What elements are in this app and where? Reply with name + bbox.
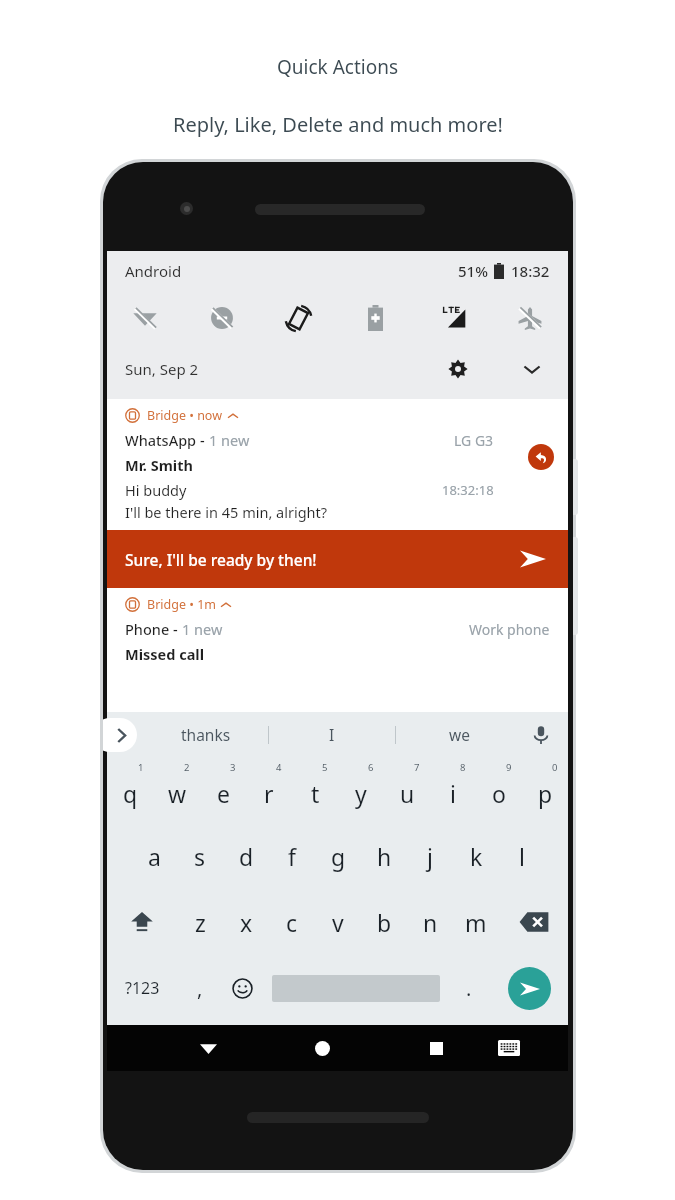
button[interactable]: 6 bbox=[338, 757, 384, 823]
button[interactable]: I bbox=[269, 712, 395, 757]
button[interactable]: h bbox=[361, 823, 407, 889]
staticText: p bbox=[538, 778, 553, 809]
button[interactable]: a bbox=[131, 823, 177, 889]
staticText: Mr. Smith bbox=[125, 455, 193, 475]
button[interactable]: Home bbox=[291, 1025, 354, 1071]
button[interactable]: thanks bbox=[143, 712, 268, 757]
staticText: b bbox=[377, 907, 392, 938]
staticText: a bbox=[148, 841, 161, 872]
button[interactable]: , bbox=[178, 955, 221, 1021]
button[interactable]: 0 bbox=[522, 757, 568, 823]
staticText: w bbox=[168, 778, 187, 809]
button[interactable]: Auto rotate bbox=[260, 291, 337, 345]
staticText: 1 new bbox=[209, 430, 250, 450]
staticText: 1 bbox=[138, 761, 144, 774]
button[interactable]: b bbox=[361, 889, 407, 955]
staticText: 7 bbox=[414, 761, 420, 774]
staticText: LG G3 bbox=[454, 431, 494, 450]
staticText: x bbox=[240, 907, 253, 938]
button[interactable]: Bridge • 1m bbox=[107, 588, 568, 670]
staticText: Quick Actions bbox=[277, 54, 399, 80]
button[interactable]: 8 bbox=[430, 757, 476, 823]
button[interactable]: . bbox=[447, 955, 490, 1021]
button[interactable]: l bbox=[499, 823, 545, 889]
staticText: 9 bbox=[506, 761, 512, 774]
staticText: thanks bbox=[181, 724, 231, 745]
staticText: Reply, Like, Delete and much more! bbox=[173, 111, 503, 138]
staticText: . bbox=[466, 975, 472, 1002]
button[interactable]: v bbox=[315, 889, 361, 955]
button[interactable]: Expand bbox=[514, 351, 550, 387]
button[interactable]: Voice input bbox=[522, 712, 560, 757]
staticText: 5 bbox=[322, 761, 328, 774]
button[interactable] bbox=[264, 955, 447, 1021]
button[interactable]: c bbox=[269, 889, 315, 955]
button[interactable]: Backspace bbox=[499, 889, 568, 955]
button[interactable]: ?123 bbox=[107, 955, 178, 1021]
staticText: 6 bbox=[368, 761, 374, 774]
staticText: t bbox=[311, 778, 320, 809]
button[interactable]: 2 bbox=[154, 757, 200, 823]
button[interactable]: Send bbox=[490, 955, 568, 1021]
staticText: d bbox=[239, 841, 254, 872]
button[interactable]: n bbox=[407, 889, 453, 955]
button[interactable]: 5 bbox=[292, 757, 338, 823]
button[interactable]: 7 bbox=[384, 757, 430, 823]
staticText: z bbox=[195, 907, 206, 938]
staticText: q bbox=[123, 778, 138, 809]
staticText: we bbox=[449, 724, 470, 745]
button[interactable]: 3 bbox=[200, 757, 246, 823]
staticText: ?123 bbox=[125, 977, 160, 999]
button[interactable]: Shift bbox=[107, 889, 177, 955]
button[interactable]: k bbox=[453, 823, 499, 889]
button[interactable]: Back bbox=[177, 1025, 240, 1071]
button[interactable]: 4 bbox=[246, 757, 292, 823]
button[interactable]: Recents bbox=[405, 1025, 468, 1071]
button[interactable]: Wi-Fi off bbox=[107, 291, 183, 345]
staticText: l bbox=[519, 841, 525, 872]
staticText: i bbox=[450, 778, 456, 809]
staticText: 8 bbox=[460, 761, 466, 774]
staticText: 3 bbox=[230, 761, 236, 774]
staticText: g bbox=[331, 841, 346, 872]
button[interactable]: we bbox=[396, 712, 522, 757]
staticText: Sun, Sep 2 bbox=[125, 359, 199, 379]
button[interactable]: m bbox=[453, 889, 499, 955]
button[interactable]: z bbox=[177, 889, 223, 955]
button[interactable]: s bbox=[177, 823, 223, 889]
button[interactable]: Sure, I'll be ready by then! bbox=[107, 530, 568, 588]
staticText: n bbox=[423, 907, 438, 938]
staticText: I'll be there in 45 min, alright? bbox=[125, 502, 328, 522]
button[interactable]: Settings bbox=[440, 351, 476, 387]
button[interactable]: d bbox=[223, 823, 269, 889]
staticText: y bbox=[355, 778, 367, 809]
button[interactable]: 1 bbox=[107, 757, 154, 823]
button[interactable]: g bbox=[315, 823, 361, 889]
button[interactable]: Do not disturb bbox=[183, 291, 260, 345]
staticText: 18:32:18 bbox=[442, 481, 494, 499]
staticText: 18:32 bbox=[511, 261, 550, 281]
staticText: I bbox=[329, 724, 335, 745]
button[interactable]: Reply bbox=[528, 444, 554, 470]
staticText: WhatsApp - bbox=[125, 430, 209, 450]
button[interactable]: Airplane mode bbox=[491, 291, 568, 345]
button[interactable]: Switch keyboard bbox=[477, 1025, 540, 1071]
staticText: u bbox=[400, 778, 415, 809]
staticText: Missed call bbox=[125, 644, 204, 664]
button[interactable]: Bridge • now bbox=[107, 399, 568, 530]
staticText: 2 bbox=[184, 761, 190, 774]
button[interactable]: More suggestions bbox=[103, 718, 137, 752]
staticText: s bbox=[194, 841, 206, 872]
staticText: r bbox=[264, 778, 274, 809]
staticText: Phone - bbox=[125, 619, 182, 639]
button[interactable]: j bbox=[407, 823, 453, 889]
staticText: f bbox=[288, 841, 296, 872]
button[interactable]: x bbox=[223, 889, 269, 955]
button[interactable]: Emoji bbox=[221, 955, 264, 1021]
button[interactable]: Battery saver bbox=[337, 291, 414, 345]
button[interactable]: 9 bbox=[476, 757, 522, 823]
button[interactable]: f bbox=[269, 823, 315, 889]
staticText: , bbox=[197, 975, 203, 1002]
staticText: m bbox=[465, 907, 487, 938]
button[interactable]: Mobile data LTE bbox=[414, 291, 491, 345]
